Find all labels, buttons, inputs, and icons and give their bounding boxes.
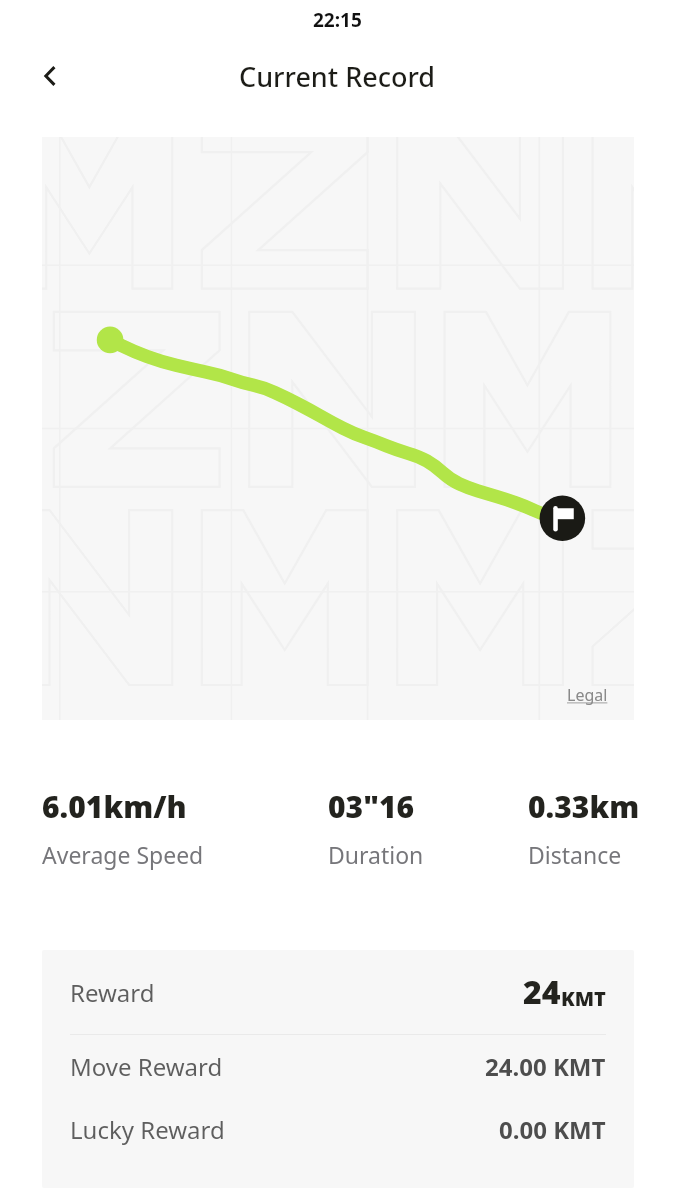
button[interactable]: Route map bbox=[42, 137, 634, 720]
button[interactable]: Move Reward bbox=[42, 1035, 634, 1098]
staticText: 03"16 bbox=[328, 786, 415, 827]
button[interactable]: Legal bbox=[567, 684, 608, 706]
staticText: Current Record bbox=[239, 58, 436, 95]
staticText: 6.01km/h bbox=[42, 786, 187, 827]
button[interactable]: Reward bbox=[42, 950, 634, 1034]
staticText: 0.33km bbox=[528, 786, 640, 827]
staticText: 22:15 bbox=[313, 7, 362, 33]
button[interactable]: 6.01km/h bbox=[42, 786, 328, 870]
staticText: Lucky Reward bbox=[70, 1113, 225, 1146]
button[interactable]: Back bbox=[22, 48, 78, 104]
button[interactable]: 03"16 bbox=[328, 786, 528, 870]
staticText: 24.00 KMT bbox=[485, 1050, 606, 1083]
staticText: 24 bbox=[523, 970, 561, 1014]
staticText: KMT bbox=[561, 985, 606, 1012]
staticText: Distance bbox=[528, 839, 622, 870]
button[interactable]: 0.33km bbox=[528, 786, 665, 870]
staticText: Average Speed bbox=[42, 839, 204, 870]
staticText: Reward bbox=[70, 976, 155, 1009]
staticText: Move Reward bbox=[70, 1050, 223, 1083]
staticText: Duration bbox=[328, 839, 424, 870]
staticText: 0.00 KMT bbox=[499, 1113, 606, 1146]
button[interactable]: Lucky Reward bbox=[42, 1098, 634, 1161]
